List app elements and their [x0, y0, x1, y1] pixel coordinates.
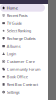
button[interactable]: TV Guide — [0, 19, 48, 27]
staticText: Home — [7, 5, 18, 10]
button[interactable]: Settings — [0, 88, 48, 96]
button[interactable]: Login — [0, 50, 48, 58]
button[interactable]: Select Ranking — [0, 27, 48, 35]
button[interactable]: Recent Posts — [0, 12, 48, 19]
staticText: Recharge Outlets — [7, 36, 36, 41]
button[interactable]: Recharge Outlets — [0, 35, 48, 42]
staticText: TV Guide — [7, 20, 22, 26]
button[interactable]: Home — [0, 4, 48, 12]
staticText: Rent Box Contract — [7, 82, 38, 87]
button[interactable]: Customer Care — [0, 58, 48, 65]
button[interactable]: Community Forum — [0, 65, 48, 73]
button[interactable]: Rent Box Contract — [0, 81, 48, 88]
staticText: Login — [7, 51, 16, 56]
staticText: Albums — [7, 43, 21, 49]
staticText: Recent Posts — [7, 13, 28, 18]
button[interactable]: Albums — [0, 42, 48, 50]
staticText: Community Forum — [7, 66, 41, 72]
button[interactable]: Book Office — [0, 73, 48, 81]
staticText: Book Office — [7, 74, 28, 79]
staticText: Settings — [7, 89, 20, 95]
staticText: Customer Care — [7, 59, 35, 64]
staticText: Select Ranking — [7, 28, 31, 33]
